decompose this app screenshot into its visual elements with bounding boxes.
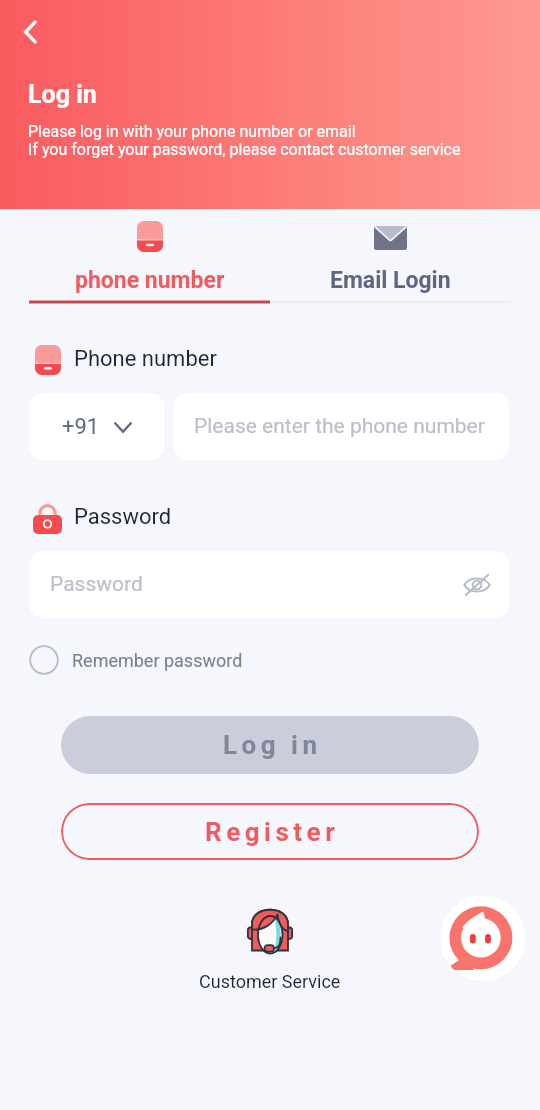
staticText: Customer Service <box>199 971 341 992</box>
button[interactable]: Email Login <box>270 209 511 302</box>
staticText: Password <box>74 504 172 530</box>
staticText: If you forget your password, please cont… <box>28 140 461 159</box>
staticText: Log in <box>223 730 322 760</box>
button[interactable]: Remember password <box>29 645 243 675</box>
button[interactable]: Customer Service <box>190 904 350 992</box>
button[interactable]: phone number <box>29 209 270 302</box>
staticText: Register <box>205 817 340 847</box>
staticText: phone number <box>75 267 225 294</box>
staticText: Log in <box>28 80 97 109</box>
staticText: Email Login <box>330 267 451 294</box>
staticText: Phone number <box>74 346 217 372</box>
button[interactable]: Log in <box>61 716 479 774</box>
staticText: +91 <box>62 414 100 440</box>
button[interactable]: +91 <box>29 393 164 460</box>
button[interactable]: Back <box>14 16 46 48</box>
button[interactable]: Show password <box>463 572 491 598</box>
button[interactable]: Please enter the phone number <box>174 393 509 460</box>
staticText: Please enter the phone number <box>194 414 485 439</box>
button[interactable]: Register <box>61 803 479 860</box>
button[interactable]: Chat support <box>440 895 526 981</box>
staticText: Password <box>50 572 143 597</box>
button[interactable]: Password <box>29 551 509 618</box>
staticText: Remember password <box>72 650 243 671</box>
staticText: Please log in with your phone number or … <box>28 122 356 141</box>
